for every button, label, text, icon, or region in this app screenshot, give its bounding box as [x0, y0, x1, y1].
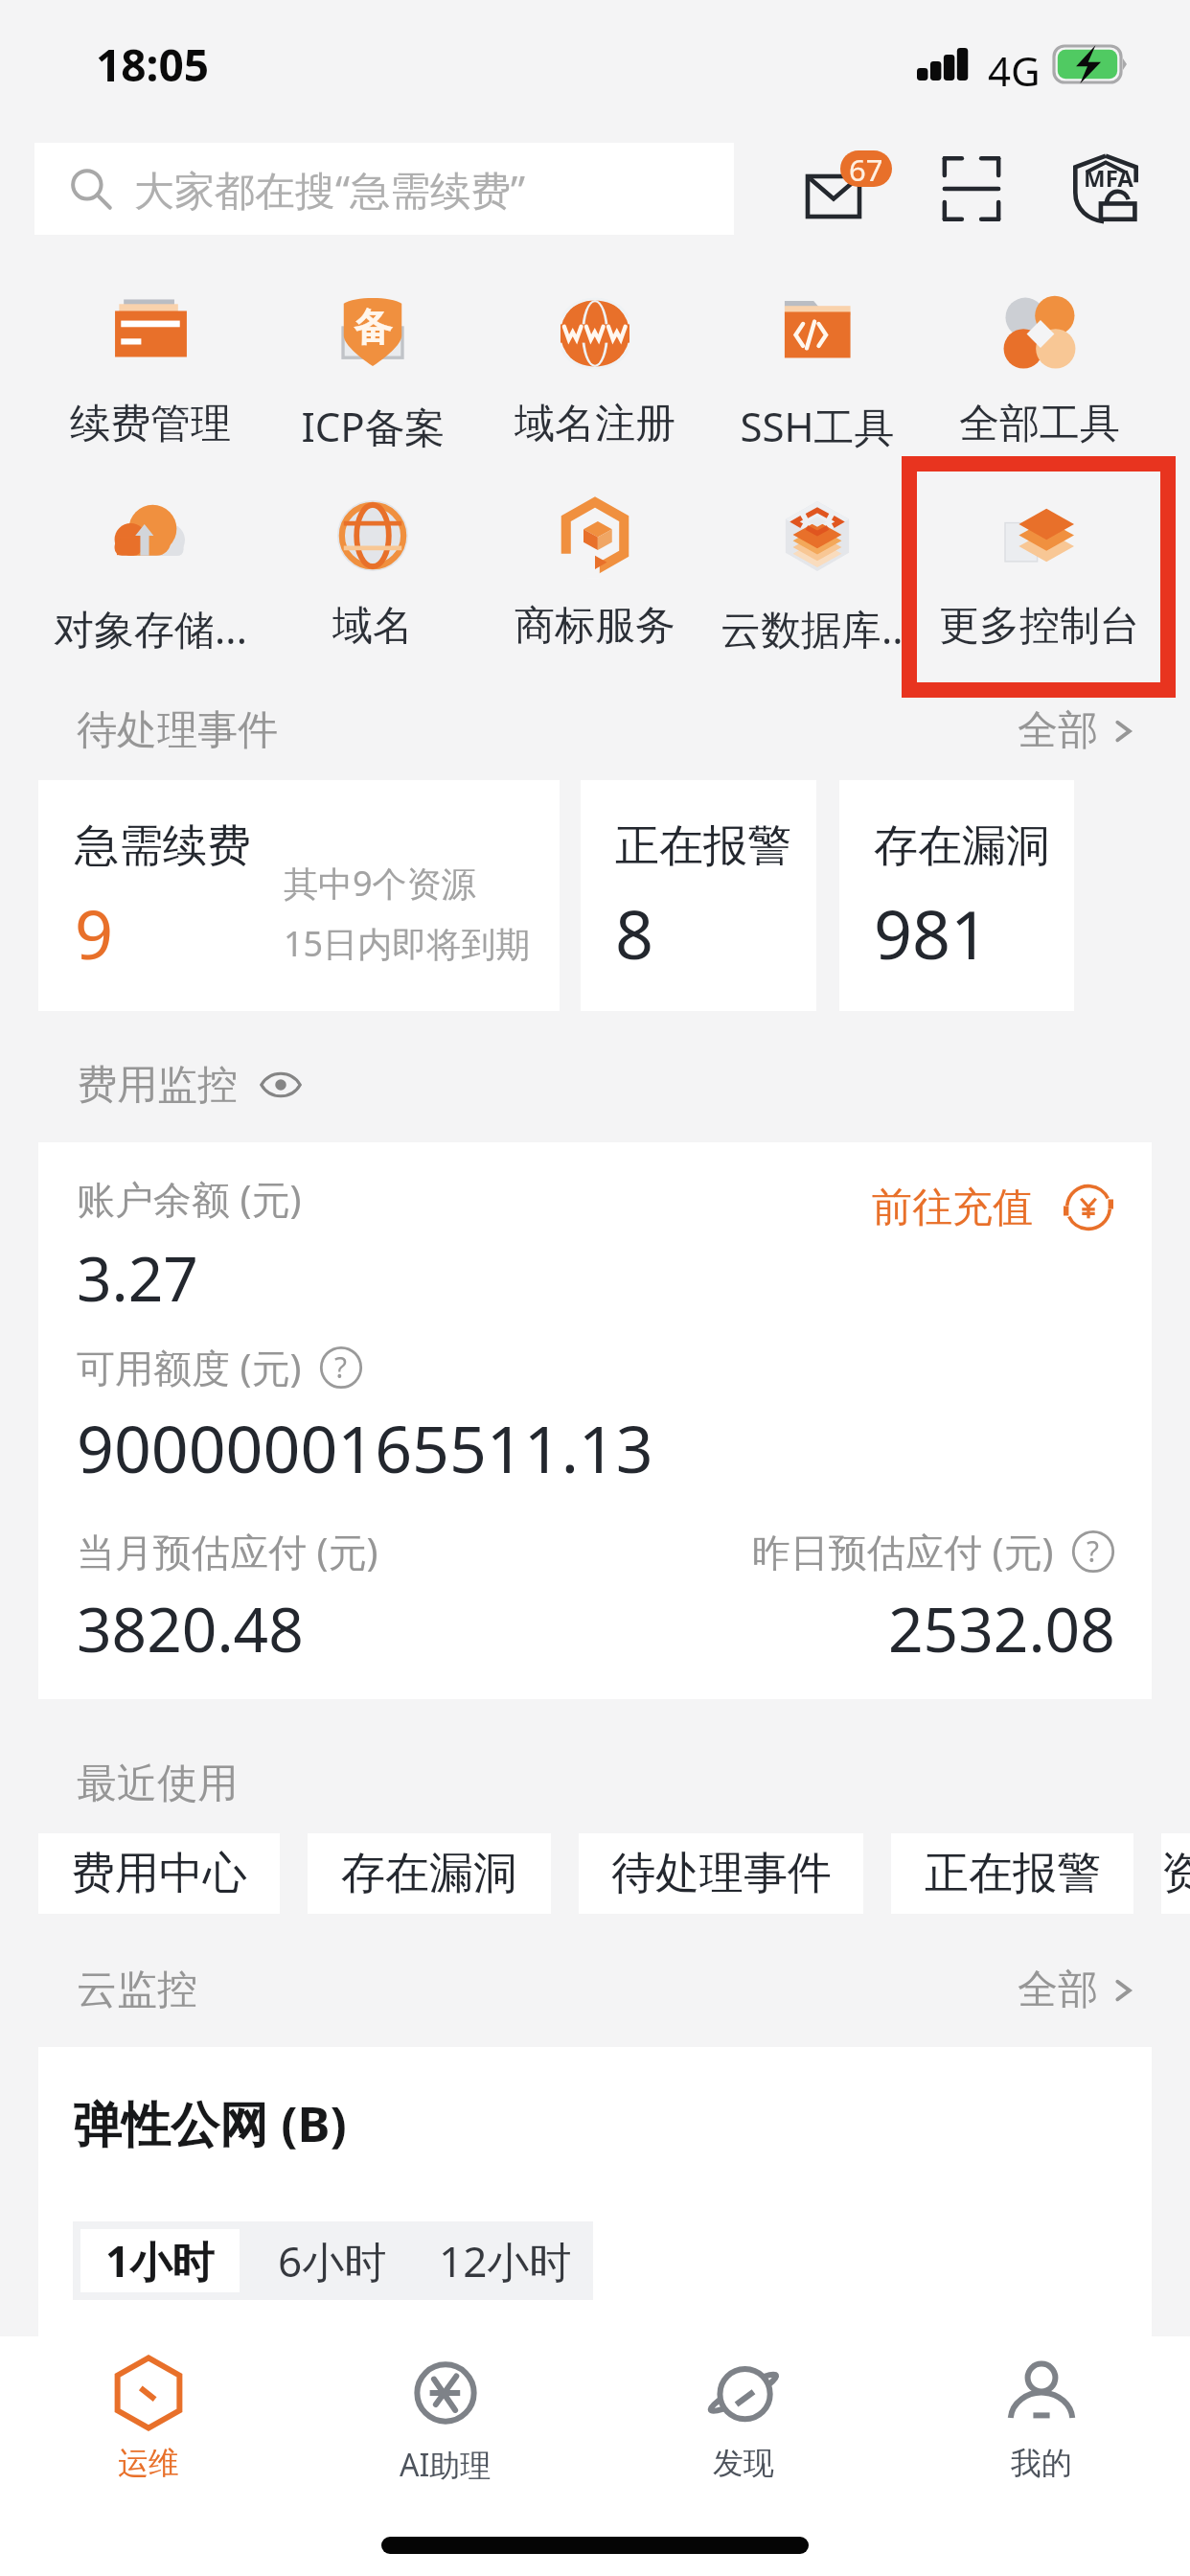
button[interactable]: 运维 [0, 2336, 297, 2509]
button[interactable]: 对象存储... [39, 467, 262, 669]
button[interactable]: Messages [796, 147, 881, 231]
staticText: 续费管理 [70, 399, 231, 449]
button[interactable]: 更多控制台 [928, 467, 1151, 669]
staticText: 昨日预估应付 (元) [752, 1525, 1054, 1577]
staticText: 1小时 [105, 2232, 215, 2289]
staticText: 弹性公网 (B) [73, 2089, 347, 2156]
staticText: 账户余额 (元) [77, 1172, 302, 1225]
button[interactable]: 续费管理 [39, 264, 262, 467]
staticText: 全部 [1018, 1965, 1098, 2015]
staticText: 15日内即将到期 [284, 920, 531, 967]
button[interactable]: 存在漏洞 [839, 780, 1074, 1011]
staticText: 待处理事件 [611, 1846, 832, 1901]
staticText: 3.27 [77, 1236, 198, 1320]
staticText: 981 [874, 887, 990, 978]
staticText: 云监控 [77, 1965, 197, 2015]
staticText: 费用中心 [71, 1846, 247, 1901]
staticText: 当月预估应付 (元) [77, 1525, 378, 1577]
staticText: 前往充值 [872, 1183, 1033, 1233]
staticText: 18:05 [96, 34, 210, 95]
staticText: 可用额度 (元) [77, 1341, 302, 1393]
button[interactable]: 我的 [892, 2336, 1190, 2509]
staticText: 2532.08 [888, 1587, 1115, 1670]
staticText: 资源管理 [1161, 1846, 1190, 1901]
staticText: 商标服务 [515, 601, 675, 652]
staticText: 其中9个资源 [284, 860, 476, 907]
staticText: 全部工具 [959, 399, 1120, 449]
button[interactable]: 全部 [1018, 1965, 1136, 2015]
staticText: 急需续费 [75, 818, 251, 874]
staticText: 待处理事件 [77, 705, 278, 756]
staticText: 大家都在搜“急需续费” [134, 162, 526, 217]
staticText: 3820.48 [77, 1587, 304, 1670]
button[interactable]: 域名 [262, 467, 484, 669]
button[interactable]: 全部工具 [928, 264, 1151, 467]
staticText: 域名注册 [515, 399, 675, 449]
button[interactable]: 发现 [594, 2336, 892, 2509]
staticText: 费用监控 [77, 1060, 238, 1111]
button[interactable]: 正在报警 [581, 780, 816, 1011]
staticText: 全部 [1018, 705, 1098, 756]
staticText: 最近使用 [77, 1759, 238, 1809]
button[interactable]: Scan [929, 147, 1014, 231]
staticText: 9 [75, 887, 114, 978]
button[interactable]: 1小时 [73, 2221, 247, 2300]
staticText: 67 [849, 150, 883, 186]
staticText: 正在报警 [615, 818, 791, 874]
staticText: 运维 [118, 2444, 179, 2482]
staticText: 4G [988, 43, 1041, 98]
button[interactable]: 急需续费 [38, 780, 560, 1011]
button[interactable]: 备 [262, 264, 484, 467]
button[interactable]: 12小时 [418, 2221, 593, 2300]
button[interactable]: 商标服务 [484, 467, 706, 669]
button[interactable]: AI助理 [297, 2336, 594, 2509]
staticText: 云数据库... [721, 601, 914, 655]
button[interactable]: 待处理事件 [579, 1833, 863, 1914]
staticText: 12小时 [439, 2232, 572, 2289]
button[interactable]: 大家都在搜“急需续费” [34, 143, 734, 235]
staticText: 存在漏洞 [341, 1846, 517, 1901]
button[interactable]: 6小时 [247, 2221, 418, 2300]
button[interactable]: 前往充值 [872, 1181, 1115, 1234]
staticText: SSH工具 [740, 399, 895, 453]
button[interactable]: 云数据库... [706, 467, 928, 669]
button[interactable]: 正在报警 [891, 1833, 1133, 1914]
staticText: 域名 [332, 601, 413, 652]
staticText: 我的 [1011, 2444, 1072, 2482]
button[interactable]: SSH工具 [706, 264, 928, 467]
staticText: 对象存储... [54, 601, 247, 655]
staticText: 8 [615, 887, 654, 978]
staticText: 9000000165511.13 [77, 1403, 653, 1492]
button[interactable]: 费用中心 [38, 1833, 280, 1914]
staticText: ? [334, 1347, 348, 1387]
staticText: 发现 [713, 2444, 774, 2482]
staticText: AI助理 [400, 2444, 492, 2486]
staticText: 备 [354, 303, 392, 351]
staticText: ICP备案 [301, 399, 446, 453]
staticText: ? [1087, 1531, 1100, 1571]
button[interactable]: Toggle visibility [259, 1063, 303, 1107]
staticText: 正在报警 [925, 1846, 1101, 1901]
button[interactable]: 资源管理 [1161, 1833, 1190, 1914]
staticText: 存在漏洞 [874, 818, 1050, 874]
button[interactable]: 域名注册 [484, 264, 706, 467]
staticText: MFA [1084, 162, 1133, 194]
button[interactable]: MFA security [1064, 147, 1148, 231]
staticText: 更多控制台 [939, 601, 1140, 652]
button[interactable]: 存在漏洞 [308, 1833, 551, 1914]
button[interactable]: 全部 [1018, 705, 1136, 756]
staticText: 6小时 [278, 2232, 387, 2289]
